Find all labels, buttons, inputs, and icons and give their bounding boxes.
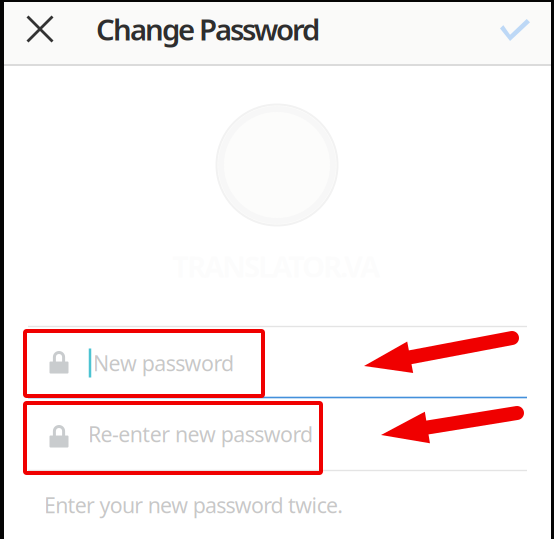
staticText: Change Password bbox=[96, 9, 320, 48]
button[interactable]: Close bbox=[4, 0, 76, 61]
button[interactable]: Save bbox=[487, 0, 543, 61]
staticText: Enter your new password twice. bbox=[44, 491, 343, 519]
staticText: New password bbox=[93, 349, 234, 377]
staticText: Re-enter new password bbox=[88, 420, 313, 448]
